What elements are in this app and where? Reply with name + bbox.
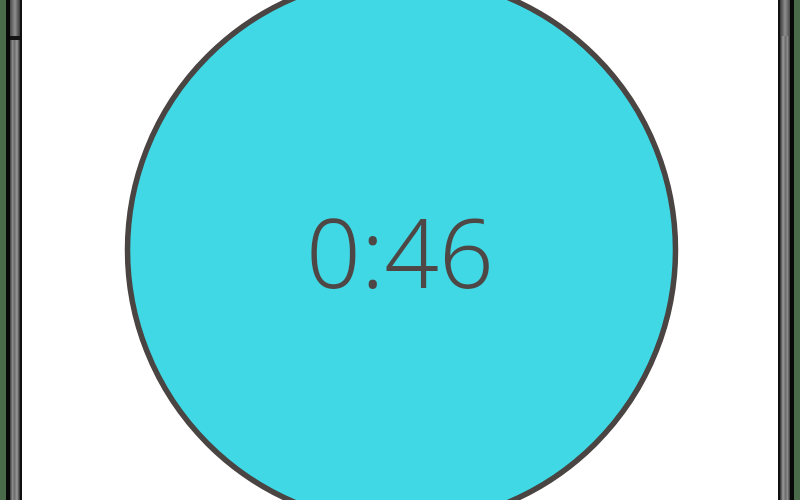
staticText: 0:46 xyxy=(306,185,494,316)
button[interactable]: Timer 0:46, tap to pause xyxy=(0,0,800,500)
